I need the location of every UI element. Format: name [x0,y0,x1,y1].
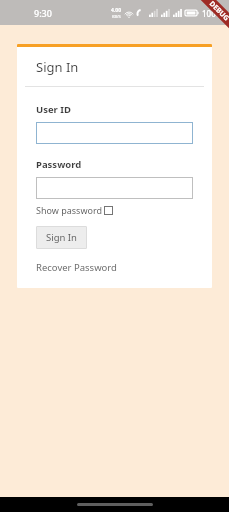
staticText: KB/S [112,14,121,19]
staticText: Sign In [36,58,79,76]
button[interactable]: Show password [36,204,113,216]
staticText: 4.00 [111,7,121,14]
staticText: Sign In [46,231,77,244]
staticText: User ID [36,103,71,116]
staticText: Password [36,158,82,171]
staticText: DEBUG [207,0,229,23]
staticText: 9:30 [34,7,52,19]
button[interactable] [36,122,193,144]
staticText: Show password [36,204,102,216]
staticText: 100% [202,8,223,19]
button[interactable] [36,177,193,199]
button[interactable]: Recover Password [36,261,117,274]
staticText: Recover Password [36,261,117,274]
button[interactable]: Sign In [36,226,87,249]
